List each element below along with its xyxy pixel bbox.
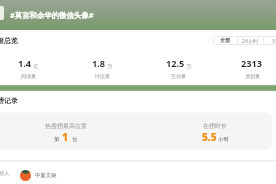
staticText: 原创量: [245, 73, 260, 79]
staticText: 讨论量: [95, 73, 110, 79]
button[interactable]: 全部: [213, 36, 237, 45]
staticText: 亿: [33, 63, 38, 69]
staticText: 12.5: [166, 57, 185, 70]
staticText: 2313: [241, 57, 263, 70]
button[interactable]: 1.4: [0, 57, 58, 79]
staticText: 5.5: [202, 130, 217, 144]
staticText: #莫言和余华的微信头像#: [10, 10, 94, 20]
staticText: 位: [72, 136, 78, 143]
staticText: 万: [107, 63, 112, 69]
staticText: 互动量: [171, 73, 186, 79]
button[interactable]: 持人: [0, 166, 276, 182]
button[interactable]: 1.8: [72, 57, 132, 79]
staticText: 1: [62, 130, 69, 144]
button[interactable]: 2313: [222, 57, 276, 79]
button[interactable]: 在榜时长: [175, 120, 255, 144]
staticText: 热搜榜最高位置: [45, 122, 87, 130]
button[interactable]: 热搜榜最高位置: [26, 120, 106, 144]
staticText: 榜记录: [0, 96, 18, 105]
staticText: 24小时: [242, 37, 259, 44]
staticText: 第: [54, 136, 60, 143]
staticText: 阅读量: [21, 73, 36, 79]
button[interactable]: 12.5: [148, 57, 208, 79]
staticText: 1.4: [18, 57, 32, 70]
staticText: 3天: [272, 37, 276, 44]
staticText: 小时: [218, 136, 229, 143]
button[interactable]: 24小时: [238, 36, 263, 45]
staticText: 1.8: [92, 57, 106, 70]
staticText: 中新文娱: [35, 172, 57, 179]
staticText: 持人: [0, 170, 10, 177]
staticText: 在榜时长: [203, 122, 227, 130]
staticText: 报总览: [0, 36, 18, 45]
staticText: 全部: [220, 37, 231, 44]
staticText: 万: [186, 63, 191, 69]
button[interactable]: 3天: [264, 36, 276, 45]
